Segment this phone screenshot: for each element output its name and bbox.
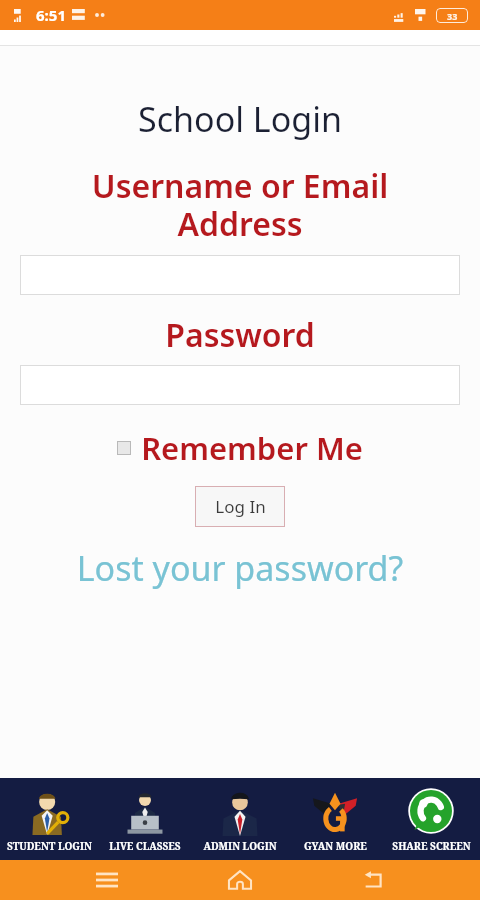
button[interactable]: Remember Me	[0, 427, 480, 469]
button[interactable]: GYAN MORE	[289, 778, 381, 860]
button[interactable]	[20, 255, 460, 295]
staticText: School Login	[0, 96, 480, 142]
staticText: ADMIN LOGIN	[203, 839, 277, 853]
staticText: Remember Me	[141, 427, 363, 469]
staticText: 6:51	[36, 5, 66, 25]
button[interactable]: LIVE CLASSES	[99, 778, 191, 860]
staticText: Username or Email Address	[0, 164, 480, 245]
staticText: SHARE SCREEN	[392, 839, 471, 853]
button[interactable]: Log In	[195, 486, 285, 527]
staticText: Password	[0, 313, 480, 357]
button[interactable]: Back	[347, 860, 401, 900]
staticText: GYAN MORE	[304, 839, 367, 853]
button[interactable]: SHARE SCREEN	[385, 778, 477, 860]
staticText: LIVE CLASSES	[109, 839, 181, 853]
button[interactable]	[20, 365, 460, 405]
staticText: Log In	[215, 495, 266, 518]
staticText: 33	[447, 10, 458, 22]
staticText: STUDENT LOGIN	[7, 839, 92, 853]
button[interactable]: Lost your password?	[0, 545, 480, 591]
button[interactable]: Menu	[80, 860, 134, 900]
button[interactable]: STUDENT LOGIN	[3, 778, 95, 860]
button[interactable]: ADMIN LOGIN	[194, 778, 286, 860]
button[interactable]: Home	[213, 860, 267, 900]
